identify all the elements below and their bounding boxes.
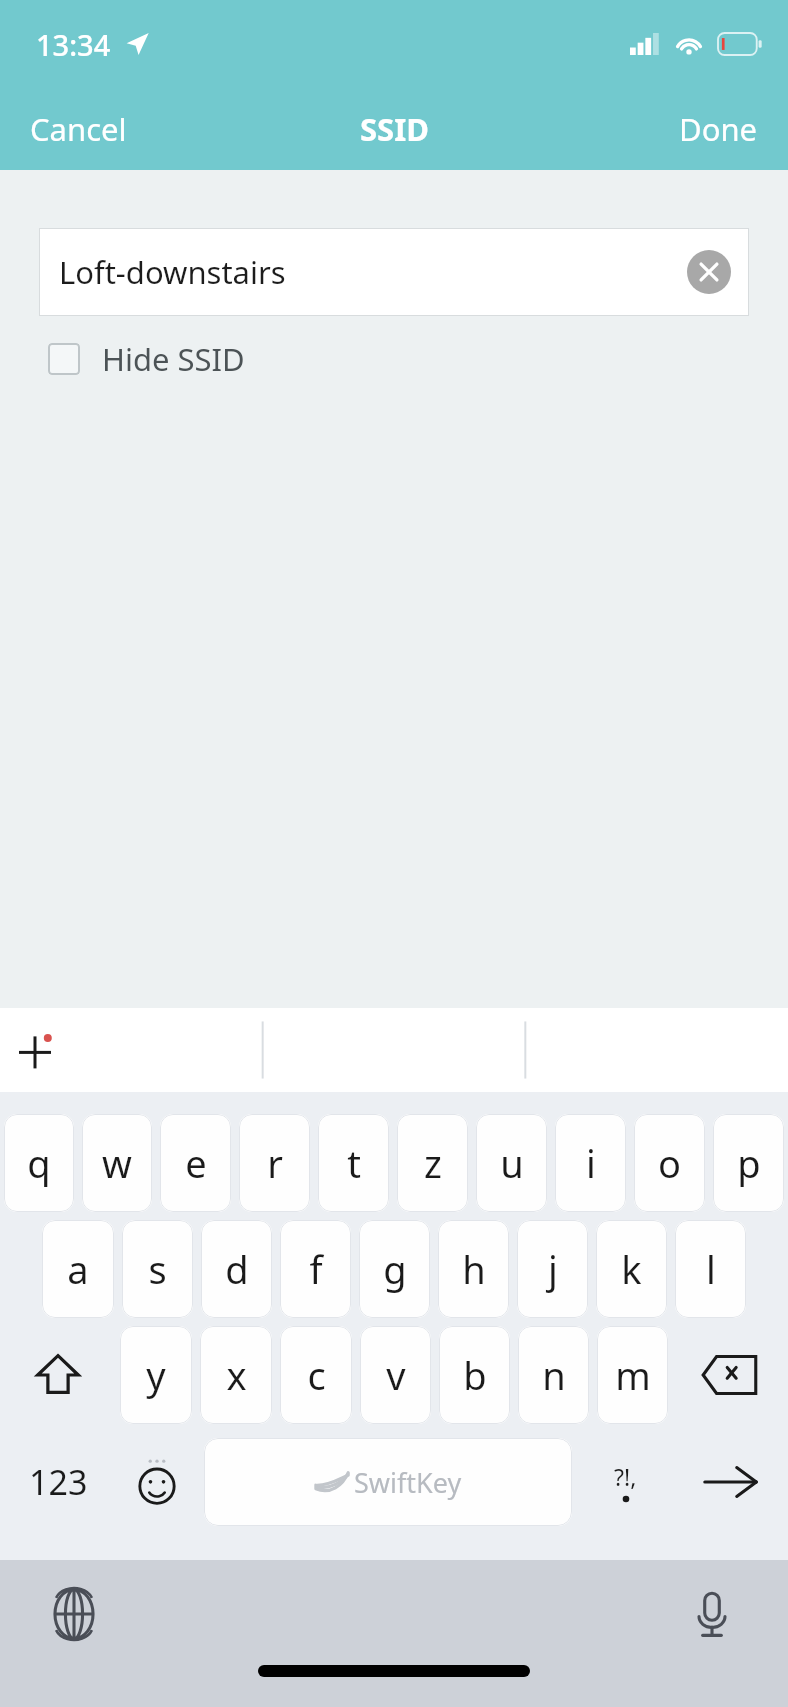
button[interactable]: 123	[0, 1434, 116, 1530]
staticText: r	[267, 1137, 283, 1189]
staticText: Cancel	[30, 108, 127, 150]
staticText: SSID	[360, 108, 429, 150]
staticText: k	[621, 1243, 642, 1295]
button[interactable]: Shift	[0, 1326, 116, 1424]
staticText: p	[737, 1137, 761, 1189]
staticText: c	[307, 1349, 326, 1401]
staticText: u	[500, 1137, 524, 1189]
staticText: o	[658, 1137, 681, 1189]
staticText: f	[309, 1243, 323, 1295]
staticText: g	[383, 1243, 407, 1295]
staticText: j	[548, 1243, 558, 1295]
button[interactable]: x	[200, 1326, 272, 1424]
staticText: y	[146, 1349, 166, 1401]
button[interactable]: w	[82, 1114, 152, 1212]
button[interactable]: e	[160, 1114, 231, 1212]
button[interactable]: Enter	[672, 1434, 788, 1530]
staticText: Hide SSID	[102, 338, 245, 380]
staticText: x	[226, 1349, 247, 1401]
staticText: ?!,	[614, 1461, 637, 1492]
button[interactable]: Clear text	[685, 248, 733, 296]
button[interactable]: p	[713, 1114, 784, 1212]
staticText: SwiftKey	[354, 1464, 462, 1501]
staticText: b	[463, 1349, 487, 1401]
button[interactable]: u	[476, 1114, 547, 1212]
button[interactable]: Space	[204, 1438, 572, 1526]
staticText: l	[706, 1243, 716, 1295]
button[interactable]: d	[201, 1220, 272, 1318]
button[interactable]: h	[438, 1220, 509, 1318]
button[interactable]: l	[675, 1220, 746, 1318]
button[interactable]: Loft-downstairs	[39, 228, 749, 316]
staticText: d	[225, 1243, 249, 1295]
button[interactable]: Backspace	[672, 1326, 788, 1424]
button[interactable]: Cancel	[0, 94, 157, 164]
staticText: v	[386, 1349, 406, 1401]
button[interactable]: v	[360, 1326, 431, 1424]
button[interactable]: Change language	[42, 1582, 106, 1646]
staticText: q	[27, 1137, 51, 1189]
button[interactable]: m	[597, 1326, 668, 1424]
button[interactable]: a	[42, 1220, 114, 1318]
button[interactable]: s	[122, 1220, 193, 1318]
button[interactable]: c	[280, 1326, 352, 1424]
button[interactable]: g	[359, 1220, 430, 1318]
button[interactable]: i	[555, 1114, 626, 1212]
button[interactable]: o	[634, 1114, 705, 1212]
staticText: 13:34	[36, 25, 111, 64]
button[interactable]: k	[596, 1220, 667, 1318]
button[interactable]: z	[397, 1114, 468, 1212]
button[interactable]: r	[239, 1114, 310, 1212]
button[interactable]: y	[120, 1326, 192, 1424]
button[interactable]: n	[518, 1326, 589, 1424]
staticText: i	[586, 1137, 596, 1189]
staticText: 123	[29, 1459, 88, 1505]
staticText: n	[542, 1349, 566, 1401]
button[interactable]: Hide SSID	[48, 338, 245, 380]
button[interactable]: Emoji	[116, 1434, 198, 1530]
button[interactable]: Punctuation	[578, 1434, 672, 1530]
staticText: s	[148, 1243, 167, 1295]
button[interactable]: f	[280, 1220, 351, 1318]
button[interactable]: j	[517, 1220, 588, 1318]
button[interactable]: b	[439, 1326, 510, 1424]
button[interactable]: Done	[649, 94, 788, 164]
staticText: m	[615, 1349, 651, 1401]
staticText: t	[347, 1137, 361, 1189]
staticText: h	[462, 1243, 486, 1295]
staticText: Loft-downstairs	[59, 251, 286, 293]
button[interactable]: Voice input	[680, 1582, 744, 1646]
staticText: Done	[679, 108, 758, 150]
button[interactable]: t	[318, 1114, 389, 1212]
staticText: e	[185, 1137, 207, 1189]
staticText: a	[67, 1243, 89, 1295]
staticText: z	[424, 1137, 442, 1189]
staticText: w	[102, 1137, 132, 1189]
button[interactable]: Add	[6, 1021, 64, 1079]
button[interactable]: q	[4, 1114, 74, 1212]
